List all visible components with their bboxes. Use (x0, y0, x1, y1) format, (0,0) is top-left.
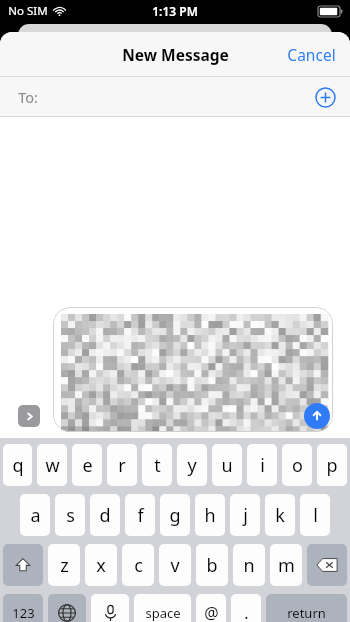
staticText: g (169, 503, 181, 528)
staticText: New Message (122, 44, 229, 65)
staticText: 1:13 PM (152, 3, 198, 19)
button[interactable]: u (212, 444, 242, 486)
staticText: To: (18, 87, 38, 107)
button[interactable]: g (160, 494, 190, 536)
button[interactable]: y (177, 444, 207, 486)
staticText: c (134, 553, 143, 578)
button[interactable]: t (142, 444, 172, 486)
button[interactable]: Dictate (91, 594, 129, 622)
staticText: m (278, 553, 295, 578)
staticText: x (96, 553, 106, 578)
button[interactable]: z (48, 544, 80, 586)
button[interactable]: Shift (3, 544, 43, 586)
staticText: o (292, 453, 303, 478)
button[interactable]: w (37, 444, 67, 486)
staticText: @ (204, 602, 219, 622)
staticText: v (170, 553, 180, 578)
staticText: y (187, 453, 197, 478)
button[interactable]: c (122, 544, 154, 586)
staticText: w (45, 453, 60, 478)
button[interactable]: v (159, 544, 191, 586)
button[interactable]: a (20, 494, 50, 536)
button[interactable]: p (317, 444, 347, 486)
button[interactable]: Send (304, 403, 330, 429)
button[interactable]: i (247, 444, 277, 486)
staticText: space (145, 604, 181, 622)
staticText: k (275, 503, 285, 528)
button[interactable]: s (55, 494, 85, 536)
button[interactable]: e (72, 444, 102, 486)
button[interactable]: l (300, 494, 330, 536)
staticText: b (206, 553, 218, 578)
staticText: j (243, 503, 248, 528)
button[interactable]: Cancel (273, 32, 350, 76)
staticText: 123 (12, 604, 35, 622)
staticText: z (60, 553, 69, 578)
staticText: h (204, 503, 216, 528)
button[interactable]: space (134, 594, 191, 622)
button[interactable]: k (265, 494, 295, 536)
staticText: u (221, 453, 233, 478)
button[interactable]: o (282, 444, 312, 486)
staticText: a (30, 503, 41, 528)
button[interactable]: return (266, 594, 347, 622)
button[interactable]: Change keyboard language (48, 594, 86, 622)
button[interactable]: h (195, 494, 225, 536)
button[interactable]: 123 (3, 594, 43, 622)
button[interactable]: x (85, 544, 117, 586)
staticText: n (243, 553, 255, 578)
button[interactable]: Show apps (18, 405, 40, 427)
staticText: . (244, 602, 249, 622)
staticText: f (137, 503, 144, 528)
button[interactable]: b (196, 544, 228, 586)
button[interactable]: Backspace (307, 544, 347, 586)
button[interactable]: Add contact (312, 84, 338, 110)
staticText: t (154, 453, 161, 478)
button[interactable]: n (233, 544, 265, 586)
staticText: s (66, 503, 75, 528)
staticText: Cancel (287, 44, 336, 65)
staticText: r (118, 453, 126, 478)
staticText: i (260, 453, 265, 478)
staticText: l (313, 503, 318, 528)
staticText: p (326, 453, 338, 478)
staticText: d (99, 503, 111, 528)
button[interactable] (53, 307, 333, 432)
staticText: No SIM (8, 3, 48, 19)
staticText: e (82, 453, 93, 478)
button[interactable]: @ (196, 594, 226, 622)
staticText: return (287, 604, 326, 622)
button[interactable]: r (107, 444, 137, 486)
button[interactable]: m (270, 544, 302, 586)
staticText: q (12, 453, 24, 478)
button[interactable]: . (231, 594, 261, 622)
button[interactable]: j (230, 494, 260, 536)
button[interactable]: f (125, 494, 155, 536)
button[interactable]: q (3, 444, 32, 486)
button[interactable]: d (90, 494, 120, 536)
